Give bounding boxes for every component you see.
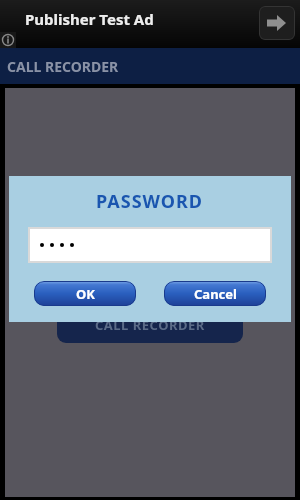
staticText: CALL RECORDER — [7, 57, 119, 76]
staticText: PASSWORD — [96, 189, 204, 214]
button[interactable] — [259, 6, 295, 40]
staticText: Cancel — [194, 285, 237, 303]
staticText: CALL RECORDER — [95, 316, 205, 334]
button[interactable] — [28, 227, 272, 263]
button[interactable]: CALL RECORDER — [57, 303, 243, 343]
button[interactable] — [0, 32, 16, 48]
button[interactable]: Cancel — [164, 281, 266, 306]
staticText: Publisher Test Ad — [25, 9, 154, 29]
button[interactable]: Publisher Test Ad — [0, 0, 300, 48]
button[interactable]: OK — [34, 281, 136, 306]
staticText: OK — [76, 285, 95, 303]
